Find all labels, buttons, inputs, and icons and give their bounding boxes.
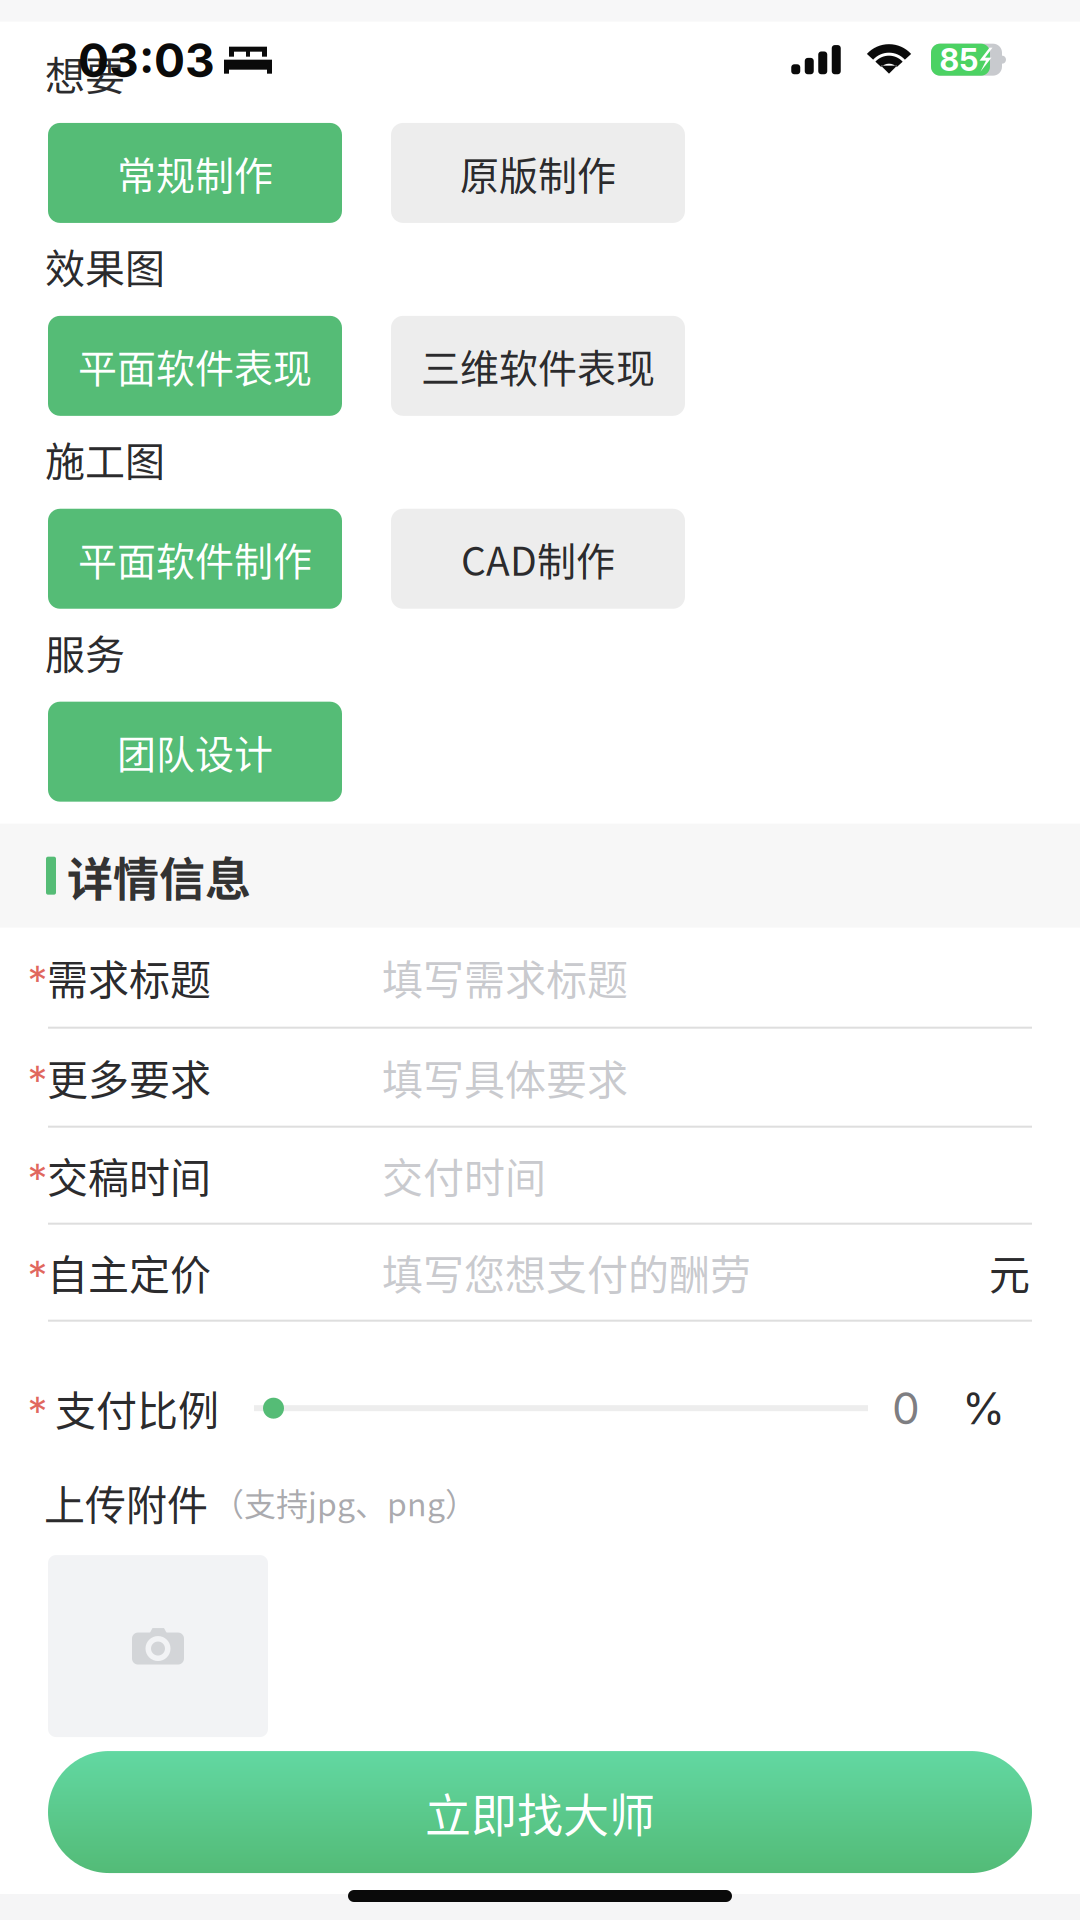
staticText: 需求标题 bbox=[47, 947, 211, 1007]
button[interactable]: 常规制作 bbox=[48, 123, 342, 223]
staticText: 85 bbox=[939, 41, 978, 78]
staticText: 服务 bbox=[45, 623, 125, 681]
button[interactable]: * bbox=[0, 1225, 1080, 1322]
staticText: （支持jpg、png） bbox=[212, 1479, 477, 1525]
button[interactable]: 平面软件表现 bbox=[48, 316, 342, 416]
staticText: 交稿时间 bbox=[47, 1145, 211, 1205]
staticText: 03:03 bbox=[78, 33, 215, 88]
staticText: 填写您想支付的酬劳 bbox=[382, 1242, 751, 1302]
staticText: 填写具体要求 bbox=[382, 1047, 628, 1107]
staticText: 0 bbox=[892, 1382, 920, 1435]
staticText: 上传附件 bbox=[44, 1473, 208, 1532]
staticText: * bbox=[28, 1387, 47, 1435]
button[interactable]: 原版制作 bbox=[391, 123, 685, 223]
staticText: * bbox=[28, 1251, 47, 1299]
button[interactable]: 上传附件 bbox=[48, 1555, 268, 1737]
button[interactable]: 团队设计 bbox=[48, 702, 342, 802]
staticText: * bbox=[28, 1154, 47, 1202]
staticText: 交付时间 bbox=[382, 1145, 546, 1205]
staticText: 团队设计 bbox=[117, 723, 273, 780]
staticText: 支付比例 bbox=[55, 1378, 219, 1438]
staticText: 效果图 bbox=[45, 237, 165, 295]
staticText: 详情信息 bbox=[67, 842, 251, 909]
staticText: 平面软件表现 bbox=[78, 338, 312, 394]
staticText: 立即找大师 bbox=[425, 1779, 655, 1845]
staticText: 元 bbox=[989, 1242, 1030, 1302]
staticText: 平面软件制作 bbox=[78, 530, 312, 587]
button[interactable]: 三维软件表现 bbox=[391, 316, 685, 416]
staticText: 施工图 bbox=[45, 430, 165, 488]
staticText: 填写需求标题 bbox=[382, 947, 628, 1007]
staticText: 常规制作 bbox=[117, 145, 273, 201]
staticText: * bbox=[28, 956, 47, 1004]
staticText: 更多要求 bbox=[47, 1047, 211, 1107]
button[interactable]: CAD制作 bbox=[391, 509, 685, 609]
button[interactable]: * bbox=[0, 1128, 1080, 1225]
staticText: 自主定价 bbox=[47, 1242, 211, 1302]
staticText: 原版制作 bbox=[460, 145, 616, 201]
button[interactable]: 平面软件制作 bbox=[48, 509, 342, 609]
button[interactable]: * bbox=[0, 928, 1080, 1029]
staticText: 想要 bbox=[45, 44, 125, 102]
staticText: 三维软件表现 bbox=[421, 338, 655, 394]
staticText: * bbox=[28, 1056, 47, 1104]
button[interactable]: * bbox=[0, 1029, 1080, 1128]
button[interactable]: 立即找大师 bbox=[48, 1751, 1032, 1873]
staticText: CAD制作 bbox=[461, 530, 615, 587]
staticText: % bbox=[962, 1382, 1005, 1435]
